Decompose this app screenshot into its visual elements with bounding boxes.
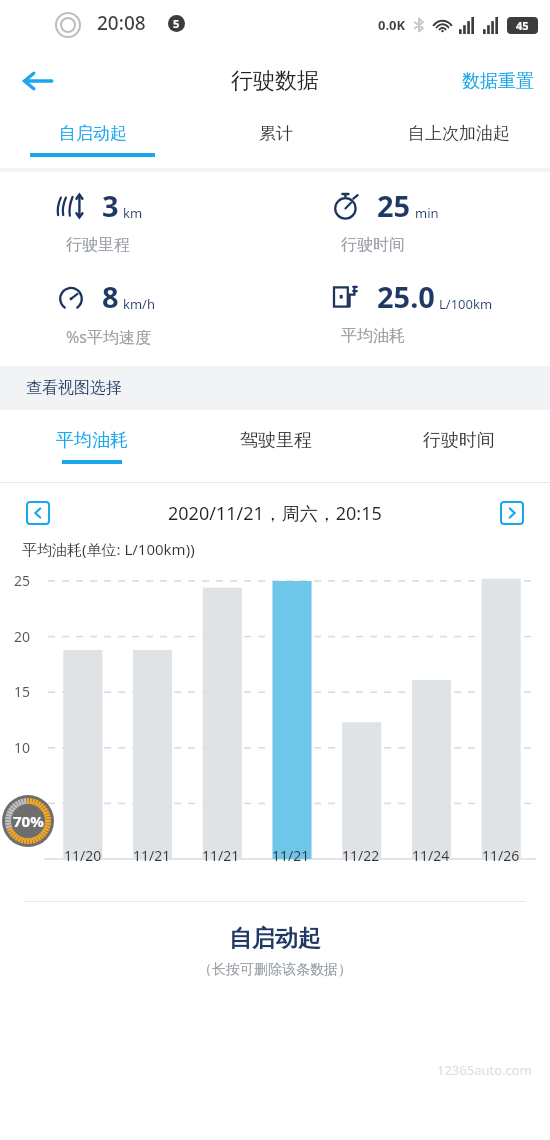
staticText: min: [415, 204, 439, 222]
staticText: 自上次加油起: [408, 123, 510, 144]
staticText: 自启动起: [229, 924, 321, 953]
button[interactable]: 行驶时间: [367, 410, 550, 482]
button[interactable]: Previous: [26, 501, 50, 525]
staticText: 5: [173, 16, 180, 31]
staticText: 行驶里程: [66, 235, 130, 255]
staticText: 11/21: [272, 846, 310, 865]
staticText: 11/21: [202, 846, 240, 865]
staticText: 11/20: [64, 846, 102, 865]
staticText: km/h: [123, 295, 155, 313]
staticText: 70%: [13, 811, 44, 831]
staticText: 行驶时间: [341, 235, 405, 255]
staticText: 平均油耗: [56, 429, 128, 452]
button[interactable]: 数据重置: [446, 58, 550, 105]
staticText: 平均油耗(单位: L/100km)): [22, 539, 195, 559]
button[interactable]: 累计: [184, 112, 367, 168]
staticText: 平均油耗: [341, 326, 405, 346]
staticText: 12365auto.com: [437, 1061, 532, 1079]
staticText: km: [123, 204, 143, 222]
staticText: 25: [377, 186, 411, 225]
button[interactable]: 平均油耗: [0, 410, 184, 482]
button[interactable]: Next: [500, 501, 524, 525]
staticText: 15: [14, 682, 31, 701]
staticText: 11/24: [412, 846, 450, 865]
staticText: 驾驶里程: [240, 429, 312, 452]
staticText: 20:08: [97, 10, 146, 36]
button[interactable]: 3: [0, 186, 275, 255]
button[interactable]: Back: [14, 57, 62, 105]
staticText: 数据重置: [462, 70, 534, 93]
button[interactable]: 自上次加油起: [367, 112, 550, 168]
staticText: 行驶数据: [231, 67, 319, 95]
staticText: 3: [102, 186, 119, 225]
staticText: 10: [14, 738, 31, 757]
staticText: 11/21: [133, 846, 171, 865]
button[interactable]: 25.0: [275, 277, 550, 346]
staticText: %s平均速度: [66, 326, 151, 348]
staticText: 25: [14, 571, 31, 590]
staticText: L/100km: [439, 295, 493, 313]
staticText: 5: [23, 793, 32, 812]
staticText: 2020/11/21，周六，20:15: [168, 501, 382, 526]
staticText: 11/22: [342, 846, 380, 865]
staticText: 20: [14, 627, 31, 646]
staticText: 行驶时间: [423, 429, 495, 452]
staticText: 0.0K: [378, 16, 406, 34]
staticText: （长按可删除该条数据）: [198, 961, 352, 979]
button[interactable]: 25: [275, 186, 550, 255]
staticText: 自启动起: [59, 123, 127, 144]
button[interactable]: 自启动起: [0, 112, 184, 168]
staticText: 8: [102, 277, 119, 316]
staticText: 查看视图选择: [26, 378, 122, 398]
staticText: 25.0: [377, 277, 435, 316]
staticText: 45: [516, 18, 529, 33]
staticText: 11/26: [482, 846, 520, 865]
button[interactable]: 驾驶里程: [184, 410, 367, 482]
button[interactable]: 8: [0, 277, 275, 348]
staticText: 累计: [259, 123, 293, 144]
